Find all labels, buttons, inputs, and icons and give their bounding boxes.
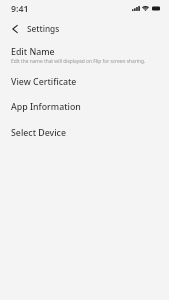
staticText: Select Device — [11, 127, 66, 139]
staticText: 9:41 — [11, 3, 29, 15]
staticText: Edit Name — [11, 46, 55, 58]
staticText: App Information — [11, 101, 81, 113]
button[interactable]: Back — [5, 20, 23, 38]
staticText: Edit the name that will displayed on Fli… — [11, 58, 146, 65]
staticText: View Certificate — [11, 76, 77, 88]
button[interactable]: Edit Name — [0, 43, 169, 73]
button[interactable]: Select Device — [0, 124, 169, 149]
staticText: Settings — [27, 23, 60, 34]
button[interactable]: View Certificate — [0, 73, 169, 98]
button[interactable]: App Information — [0, 98, 169, 124]
